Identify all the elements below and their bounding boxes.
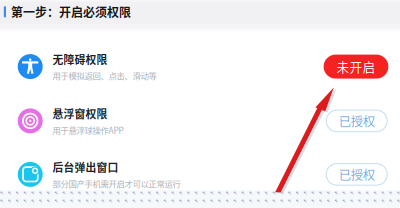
staticText: 悬浮窗权限: [53, 106, 108, 121]
staticText: 后台弹出窗口: [53, 159, 119, 175]
staticText: 未开启: [336, 57, 375, 76]
button[interactable]: 已授权: [327, 110, 388, 132]
button[interactable]: 已授权: [327, 164, 388, 185]
staticText: 无障碍权限: [53, 51, 108, 67]
staticText: 用于悬浮球操作APP: [53, 124, 124, 136]
staticText: 已授权: [339, 165, 375, 183]
staticText: 已授权: [339, 112, 375, 130]
staticText: 用于模拟返回、点击、滑动等: [53, 70, 157, 82]
staticText: 部分国产手机需开启才可以正常运行: [53, 177, 181, 190]
button[interactable]: 未开启: [324, 55, 388, 79]
staticText: 第一步：开启必须权限: [11, 3, 131, 20]
